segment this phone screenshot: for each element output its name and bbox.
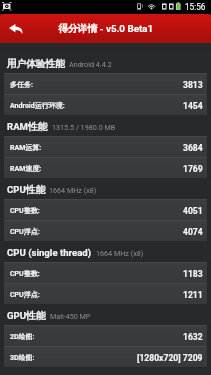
button[interactable]: CPU整数:: [4, 199, 207, 220]
button[interactable]: 3D绘图:: [4, 346, 207, 367]
staticText: CPU整数:: [10, 206, 40, 215]
staticText: CPU性能: [7, 184, 45, 196]
staticText: 3D绘图:: [10, 353, 35, 362]
staticText: 1315.5 / 1980.0 MB: [52, 123, 116, 131]
staticText: Android 4.4.2: [69, 60, 112, 68]
staticText: 1454: [183, 101, 203, 111]
staticText: 1769: [183, 164, 203, 174]
staticText: 1632: [183, 332, 203, 342]
staticText: RAM性能: [7, 121, 48, 133]
staticText: 3684: [183, 143, 203, 153]
staticText: RAM运算:: [10, 143, 42, 152]
button[interactable]: CPU (single thread): [0, 241, 211, 262]
button[interactable]: CPU浮点:: [4, 220, 207, 241]
staticText: 2D绘图:: [10, 332, 35, 341]
staticText: CPU浮点:: [10, 290, 40, 299]
staticText: 1664 MHz (x8): [96, 249, 144, 257]
button[interactable]: 2D绘图:: [4, 325, 207, 346]
button[interactable]: GPU性能: [0, 304, 211, 325]
staticText: 1664 MHz (x8): [49, 186, 97, 194]
staticText: Android运行环境:: [10, 101, 65, 110]
staticText: 多任务:: [10, 80, 33, 89]
staticText: GPU性能: [7, 310, 46, 322]
button[interactable]: Android运行环境:: [4, 94, 207, 115]
staticText: RAM速度:: [10, 164, 42, 173]
button[interactable]: RAM性能: [0, 115, 211, 136]
staticText: 4051: [183, 206, 203, 216]
staticText: 4074: [183, 227, 203, 237]
staticText: 得分详情 - v5.0 Beta1: [58, 23, 154, 35]
button[interactable]: CPU整数:: [4, 262, 207, 283]
button[interactable]: 用户体验性能: [0, 52, 211, 73]
staticText: 1211: [183, 290, 203, 300]
staticText: [1280x720] 7209: [137, 353, 203, 363]
button[interactable]: CPU性能: [0, 178, 211, 199]
staticText: 3813: [183, 80, 203, 90]
staticText: 15:56: [185, 2, 206, 12]
staticText: CPU浮点:: [10, 227, 40, 236]
staticText: Mali-450 MP: [50, 312, 91, 320]
staticText: 1183: [183, 269, 203, 279]
staticText: CPU (single thread): [7, 247, 92, 258]
staticText: 用户体验性能: [7, 58, 65, 70]
button[interactable]: 多任务:: [4, 73, 207, 94]
staticText: CPU整数:: [10, 269, 40, 278]
button[interactable]: Back: [0, 14, 31, 43]
button[interactable]: RAM运算:: [4, 136, 207, 157]
button[interactable]: CPU浮点:: [4, 283, 207, 304]
button[interactable]: RAM速度:: [4, 157, 207, 178]
